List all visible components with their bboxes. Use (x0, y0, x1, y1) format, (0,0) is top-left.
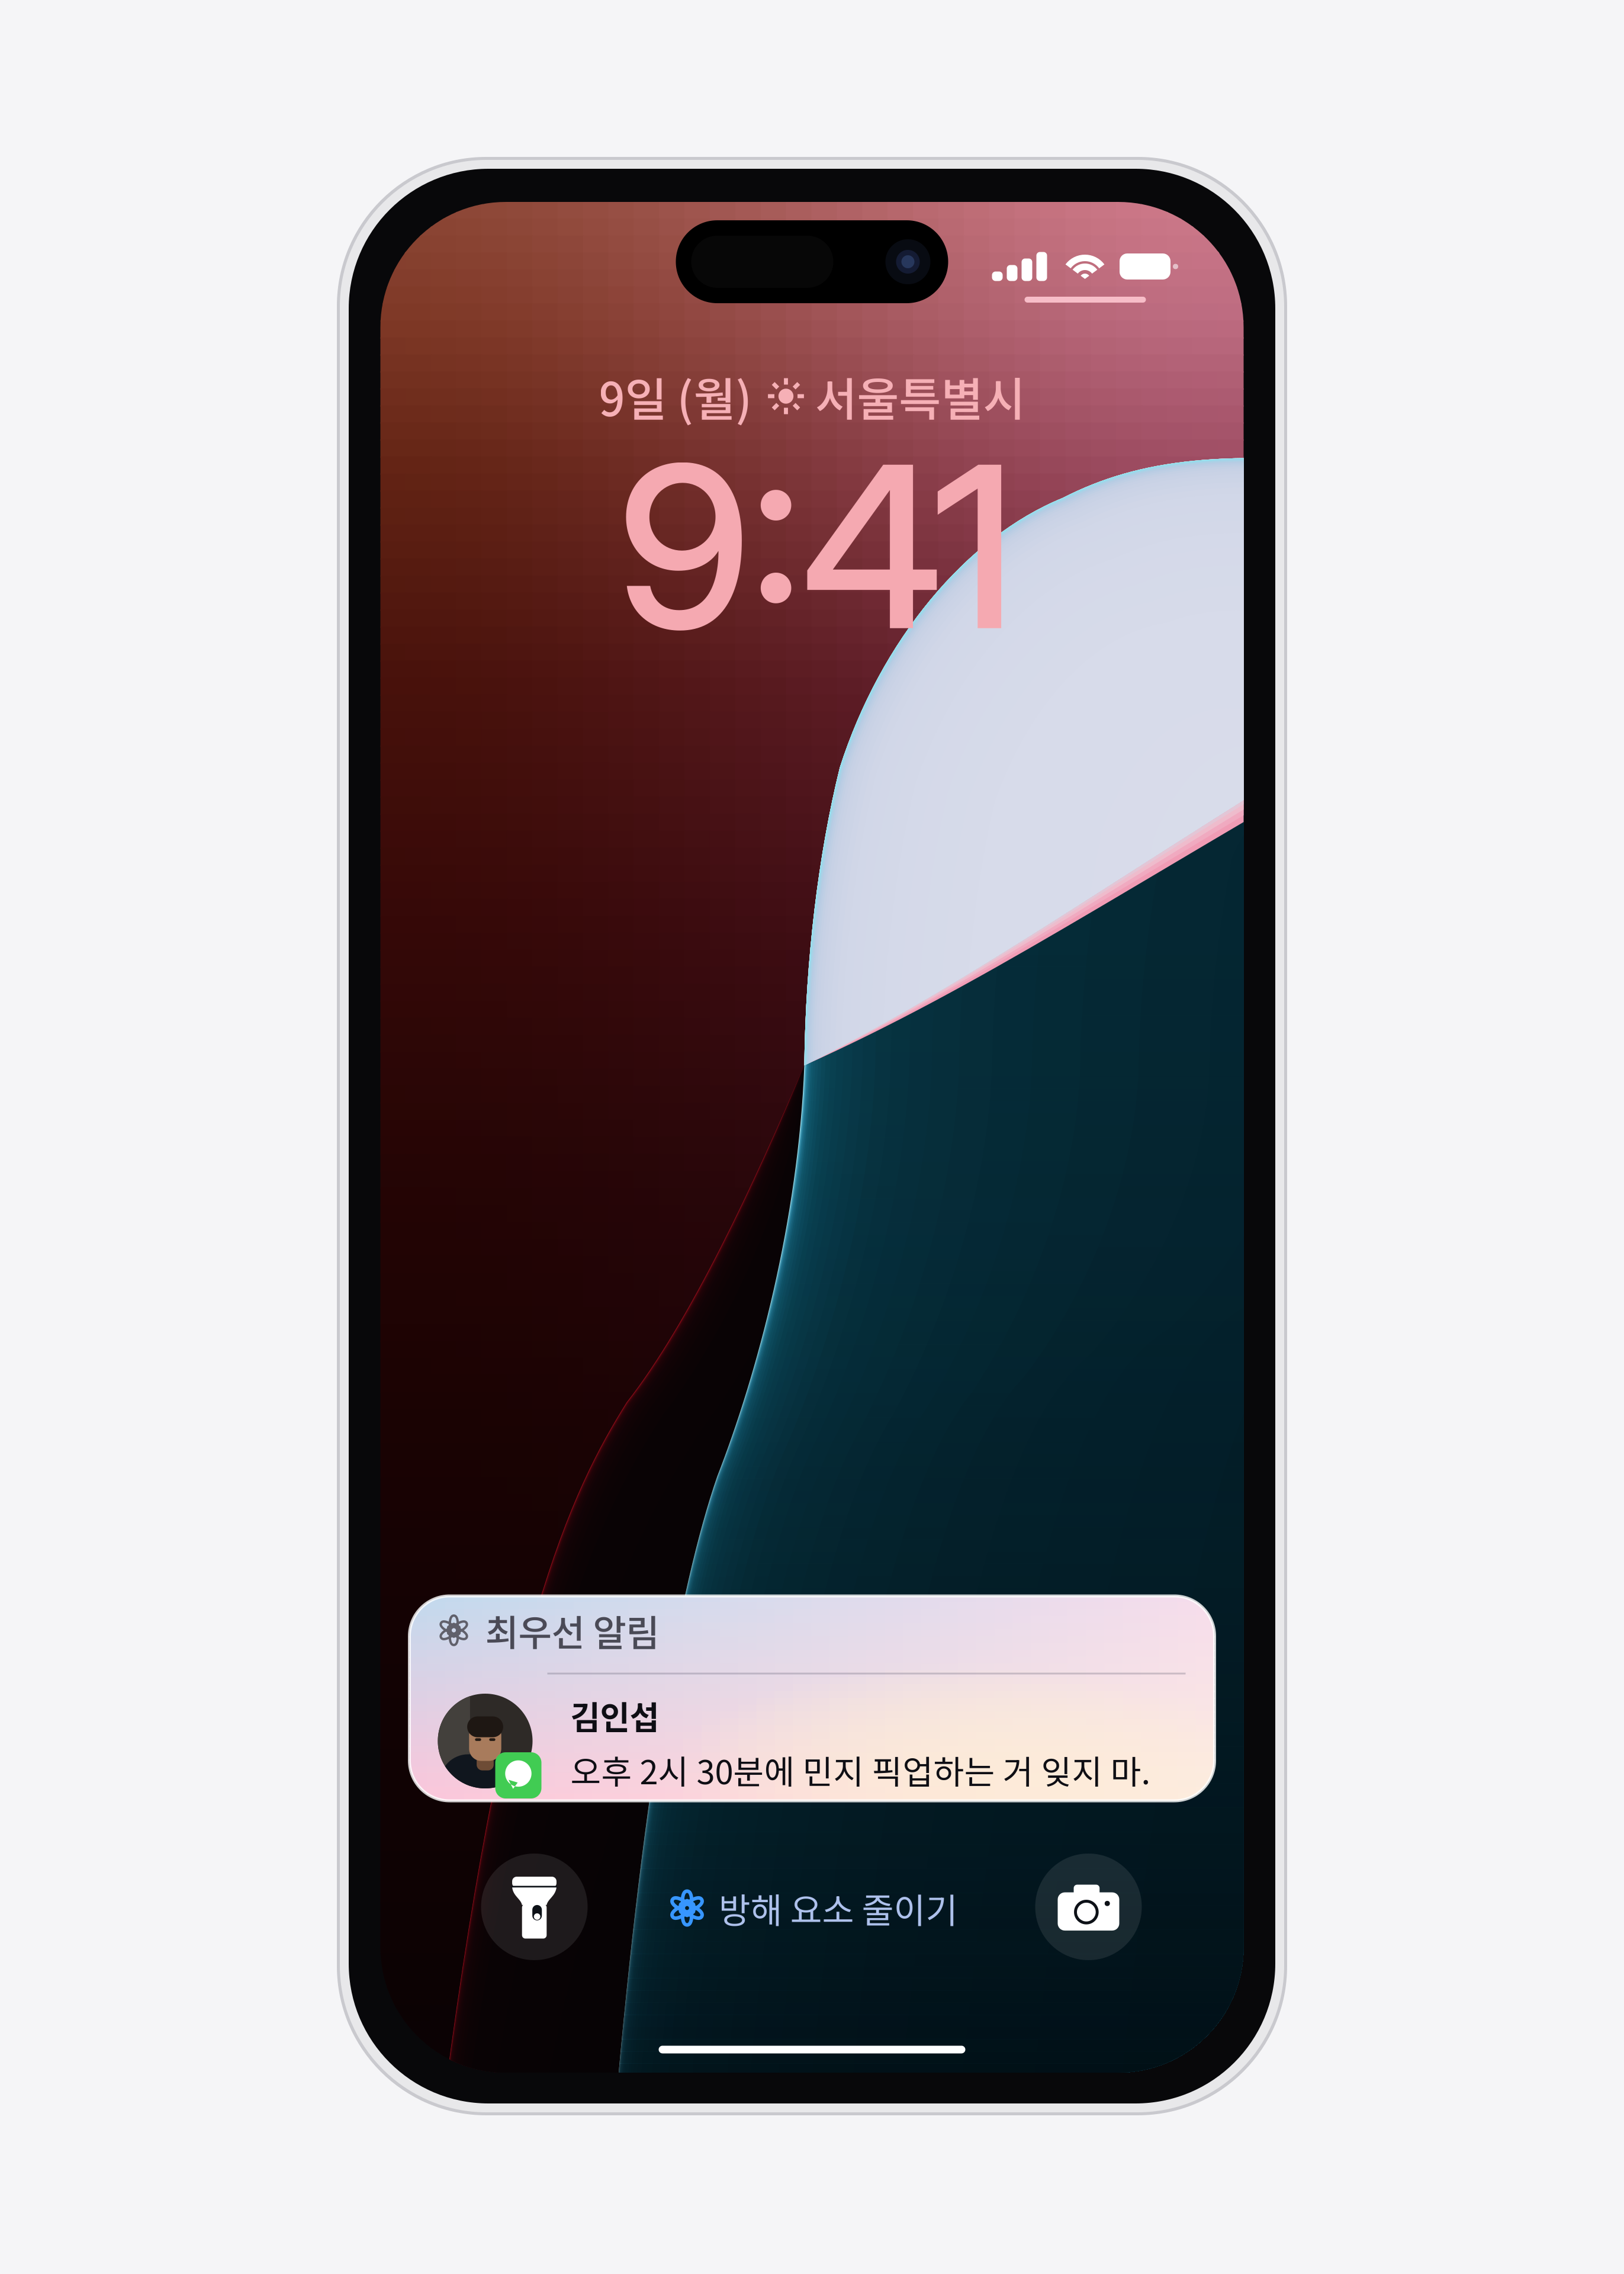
staticText: 서울특별시 (815, 363, 1025, 429)
staticText: 김인섭 (570, 1692, 659, 1739)
staticText: 9일 (월) (599, 363, 752, 429)
staticText: 최우선 알림 (485, 1604, 659, 1657)
button[interactable]: 최우선 알림 (409, 1596, 1215, 1801)
staticText: 방해 요소 줄이기 (718, 1883, 958, 1933)
button[interactable]: 방해 요소 줄이기 (660, 1875, 966, 1941)
button[interactable]: 카메라 (1035, 1854, 1142, 1960)
staticText: 오후 2시 30분에 민지 픽업하는 거 잊지 마. (570, 1746, 1151, 1794)
staticText: 9:41 (617, 411, 1016, 682)
button[interactable]: 손전등 (481, 1854, 588, 1960)
